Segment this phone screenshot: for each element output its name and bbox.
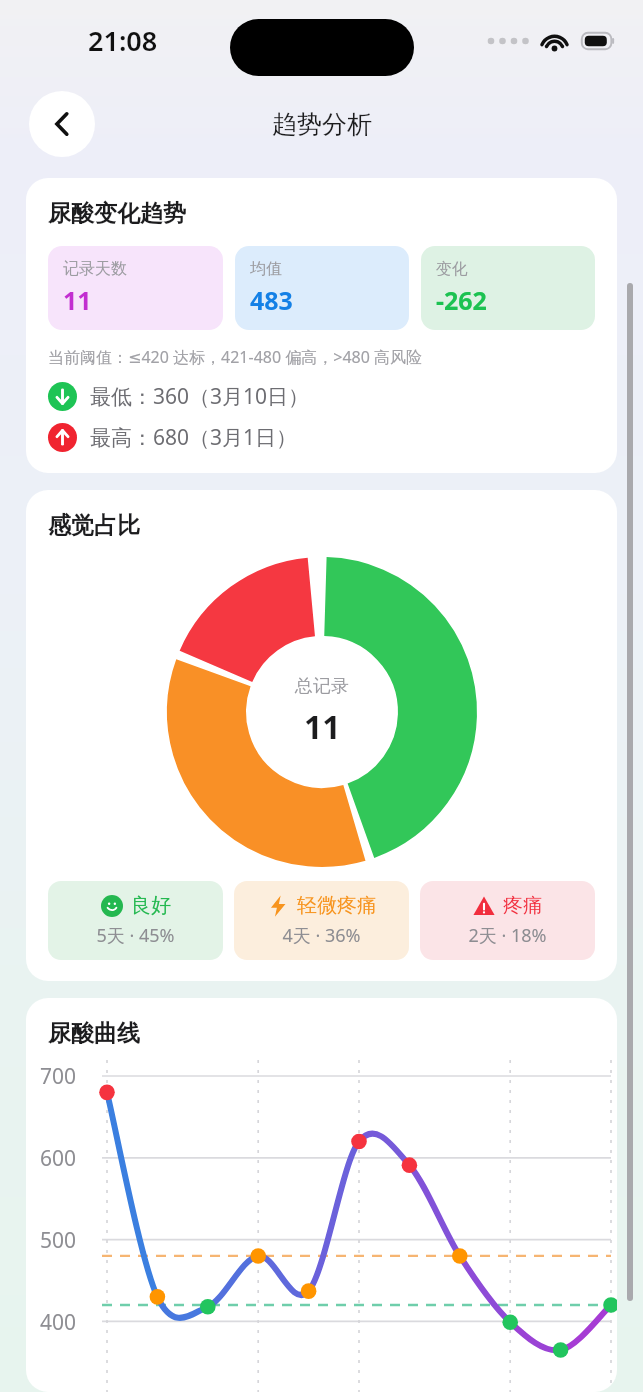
staticText: 11 (304, 705, 341, 749)
button[interactable]: 均值 (235, 246, 409, 330)
staticText: 尿酸变化趋势 (48, 199, 186, 228)
staticText: 21:08 (88, 22, 158, 59)
staticText: 良好 (131, 893, 171, 918)
staticText: 5天 · 45% (96, 923, 175, 948)
staticText: 趋势分析 (272, 109, 372, 140)
staticText: 700 (40, 1062, 77, 1091)
button[interactable]: 良好 (48, 881, 223, 960)
staticText: 500 (40, 1226, 77, 1255)
staticText: 483 (250, 283, 293, 317)
staticText: 轻微疼痛 (297, 893, 377, 918)
staticText: 当前阈值：≤420 达标，421-480 偏高，>480 高风险 (48, 346, 423, 368)
button[interactable]: 疼痛 (420, 881, 595, 960)
staticText: 4天 · 36% (282, 923, 361, 948)
staticText: 感觉占比 (48, 511, 140, 540)
staticText: 400 (40, 1308, 77, 1337)
staticText: 2天 · 18% (468, 923, 547, 948)
staticText: -262 (436, 283, 487, 317)
button[interactable]: 轻微疼痛 (234, 881, 409, 960)
staticText: 600 (40, 1144, 77, 1173)
staticText: 最低：360（3月10日） (90, 382, 310, 411)
staticText: 尿酸曲线 (48, 1019, 140, 1048)
staticText: 疼痛 (503, 893, 543, 918)
staticText: 11 (63, 283, 92, 317)
staticText: 均值 (250, 259, 282, 279)
button[interactable]: 变化 (421, 246, 595, 330)
button[interactable]: Back (29, 91, 95, 157)
staticText: 记录天数 (63, 259, 127, 279)
button[interactable]: 记录天数 (48, 246, 223, 330)
staticText: 总记录 (295, 675, 349, 698)
staticText: 变化 (436, 259, 468, 279)
staticText: 最高：680（3月1日） (90, 423, 298, 452)
